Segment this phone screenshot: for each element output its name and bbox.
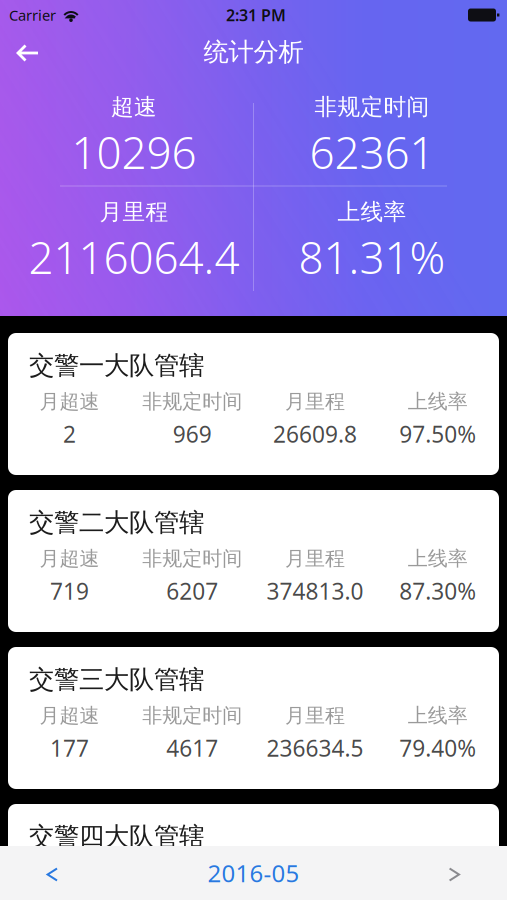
staticText: 非规定时间 xyxy=(142,546,242,571)
staticText: 上线率 xyxy=(408,389,468,414)
staticText: 2116064.4 xyxy=(28,228,239,286)
staticText: 2016-05 xyxy=(207,857,299,889)
staticText: 月超速 xyxy=(39,860,99,885)
staticText: 交警三大队管辖 xyxy=(29,664,204,695)
button[interactable]: 2016-05 xyxy=(207,846,299,900)
staticText: 月超速 xyxy=(39,546,99,571)
staticText: 上线率 xyxy=(408,860,468,885)
button[interactable]: 交警四大队管辖 xyxy=(8,804,499,900)
staticText: 月超速 xyxy=(39,703,99,728)
staticText: 月里程 xyxy=(99,198,168,226)
staticText: 4617 xyxy=(166,733,218,763)
staticText: 969 xyxy=(173,419,212,449)
staticText: 62361 xyxy=(309,123,434,181)
staticText: 上线率 xyxy=(408,546,468,571)
staticText: 统计分析 xyxy=(203,36,303,67)
staticText: 非规定时间 xyxy=(314,93,429,121)
staticText: 719 xyxy=(50,576,89,606)
staticText: 10296 xyxy=(71,123,196,181)
button[interactable]: 交警三大队管辖 xyxy=(8,647,499,789)
staticText: 月超速 xyxy=(39,389,99,414)
staticText: 非规定时间 xyxy=(142,860,242,885)
staticText: Carrier xyxy=(9,5,56,25)
staticText: 超速 xyxy=(111,93,157,121)
button[interactable]: Back xyxy=(0,30,52,74)
staticText: 236634.5 xyxy=(266,733,363,763)
staticText: 交警二大队管辖 xyxy=(29,507,204,538)
staticText: 79.40% xyxy=(399,733,476,763)
button[interactable]: Previous month xyxy=(0,846,104,900)
staticText: 374813.0 xyxy=(266,576,363,606)
staticText: 上线率 xyxy=(337,198,406,226)
button[interactable]: Next month xyxy=(403,846,507,900)
staticText: 87.30% xyxy=(399,576,476,606)
staticText: 非规定时间 xyxy=(142,389,242,414)
staticText: 81.31% xyxy=(298,228,445,286)
staticText: 交警四大队管辖 xyxy=(29,821,204,852)
staticText: 交警一大队管辖 xyxy=(29,350,204,381)
staticText: 97.50% xyxy=(399,419,476,449)
button[interactable]: 交警二大队管辖 xyxy=(8,490,499,632)
button[interactable]: 交警一大队管辖 xyxy=(8,333,499,475)
staticText: 非规定时间 xyxy=(142,703,242,728)
staticText: 月里程 xyxy=(285,703,345,728)
staticText: 177 xyxy=(50,733,89,763)
staticText: 2 xyxy=(63,419,76,449)
staticText: 月里程 xyxy=(285,389,345,414)
staticText: 6207 xyxy=(166,576,218,606)
staticText: 上线率 xyxy=(408,703,468,728)
staticText: 2:31 PM xyxy=(226,4,286,26)
staticText: 月里程 xyxy=(285,546,345,571)
staticText: 月里程 xyxy=(285,860,345,885)
staticText: 26609.8 xyxy=(273,419,357,449)
